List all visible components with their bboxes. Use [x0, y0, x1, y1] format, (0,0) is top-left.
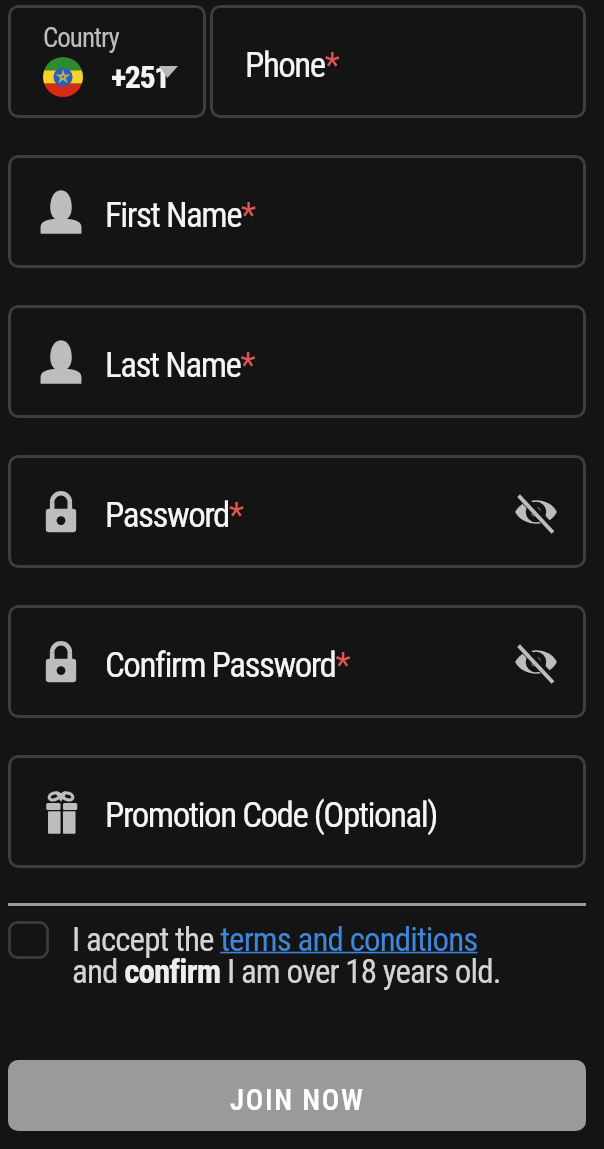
button[interactable]: Show password [512, 488, 560, 536]
button[interactable]: Confirm Password* [8, 605, 586, 718]
staticText: Last Name* [105, 345, 255, 386]
button[interactable]: First Name* [8, 155, 586, 268]
button[interactable]: JOIN NOW [8, 1060, 586, 1131]
staticText: Confirm Password* [105, 645, 350, 686]
button[interactable]: Select country [8, 5, 206, 118]
button[interactable]: Show password [512, 638, 560, 686]
button[interactable]: Last Name* [8, 305, 586, 418]
button[interactable]: Password* [8, 455, 586, 568]
staticText: First Name* [105, 195, 255, 236]
staticText: +251 [111, 58, 169, 96]
staticText: Promotion Code (Optional) [105, 795, 438, 836]
staticText: Country [43, 22, 119, 54]
button[interactable]: Phone* [210, 5, 586, 118]
button[interactable]: I accept the terms and conditions and co… [8, 920, 586, 991]
staticText: Phone* [245, 45, 339, 86]
staticText: I accept the terms and conditions and co… [72, 920, 501, 991]
staticText: Password* [105, 495, 243, 536]
staticText: JOIN NOW [230, 1083, 365, 1117]
button[interactable]: Promotion Code (Optional) [8, 755, 586, 868]
